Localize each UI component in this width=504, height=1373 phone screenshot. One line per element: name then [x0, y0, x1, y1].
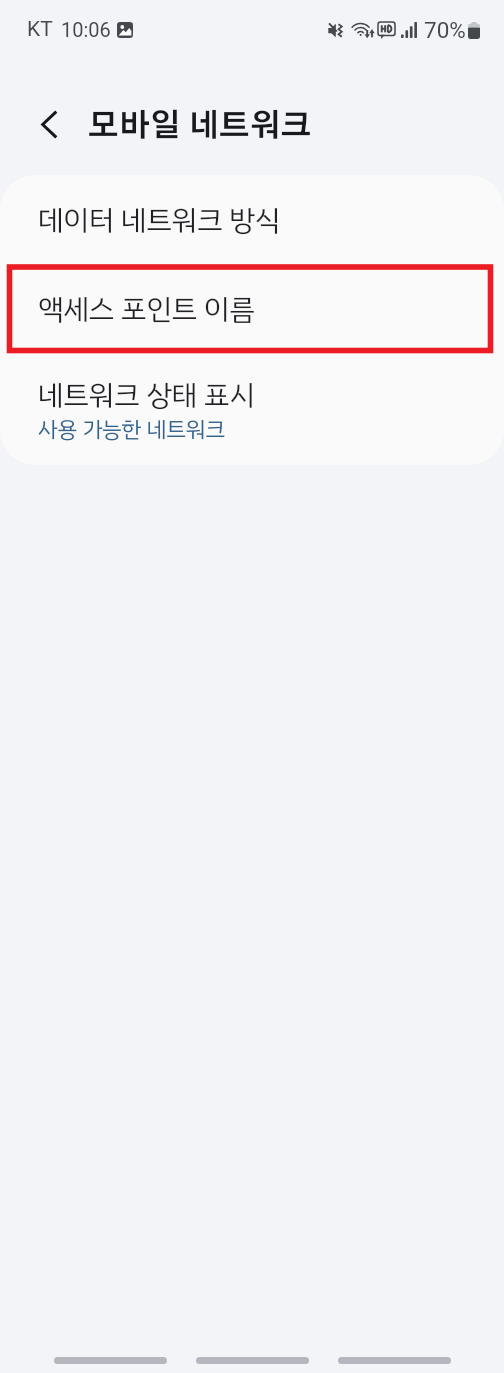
staticText: 네트워크 상태 표시 — [38, 374, 255, 417]
button[interactable]: 액세스 포인트 이름 — [0, 265, 504, 351]
staticText: 모바일 네트워크 — [88, 111, 312, 142]
button[interactable]: Back — [338, 1341, 451, 1373]
button[interactable]: Recents — [54, 1341, 167, 1373]
button[interactable]: Home — [196, 1341, 309, 1373]
button[interactable]: 네트워크 상태 표시 — [0, 351, 504, 465]
staticText: 액세스 포인트 이름 — [38, 288, 255, 331]
staticText: 사용 가능한 네트워크 — [38, 413, 226, 446]
button[interactable]: 데이터 네트워크 방식 — [0, 175, 504, 265]
button[interactable]: Back — [27, 102, 71, 146]
staticText: 데이터 네트워크 방식 — [38, 199, 281, 242]
staticText: 10:06 — [61, 18, 111, 41]
staticText: KT — [27, 17, 53, 42]
staticText: 70% — [424, 17, 466, 43]
